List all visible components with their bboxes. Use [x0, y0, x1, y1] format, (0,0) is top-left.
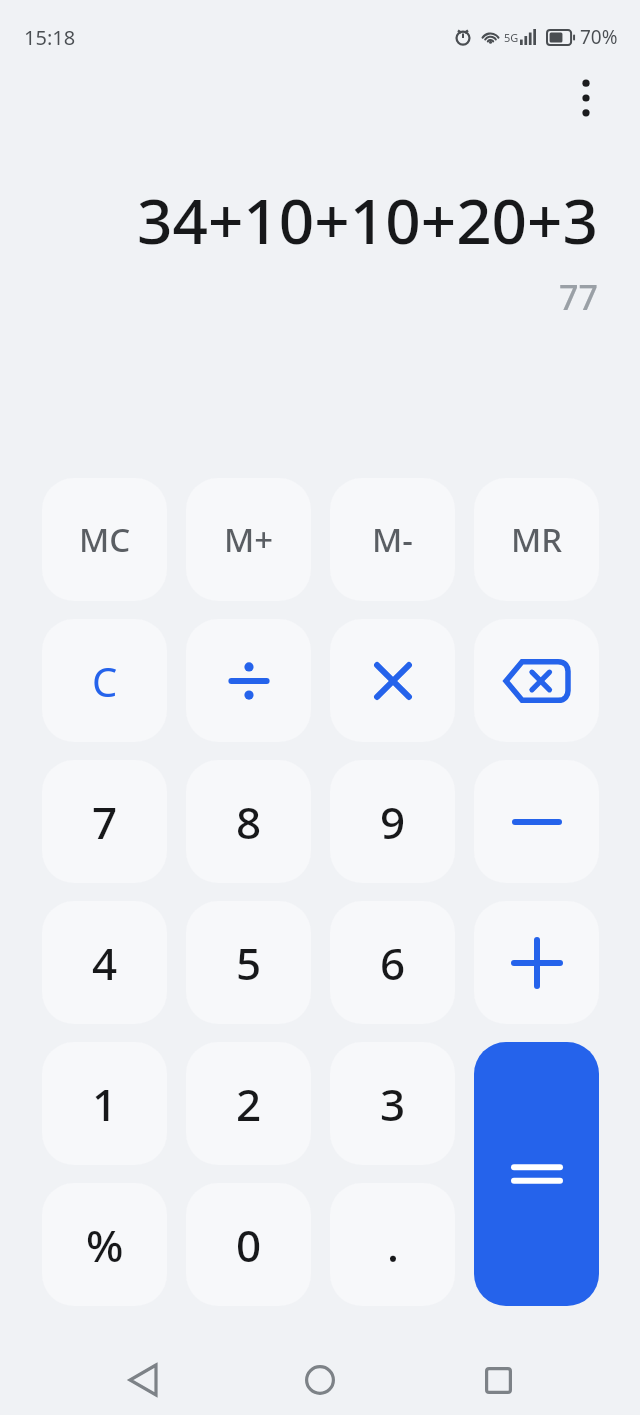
- staticText: 1: [92, 1074, 118, 1134]
- button[interactable]: MC: [42, 478, 167, 601]
- button[interactable]: Home: [285, 1345, 355, 1415]
- staticText: 3: [380, 1074, 406, 1134]
- button[interactable]: More options: [560, 72, 612, 124]
- staticText: 8: [236, 792, 262, 852]
- staticText: 4: [92, 933, 118, 993]
- button[interactable]: M-: [330, 478, 455, 601]
- button[interactable]: Back: [108, 1345, 178, 1415]
- staticText: 0: [236, 1215, 262, 1275]
- button[interactable]: 3: [330, 1042, 455, 1165]
- staticText: 70%: [580, 24, 618, 50]
- staticText: M+: [224, 517, 274, 562]
- button[interactable]: %: [42, 1183, 167, 1306]
- staticText: 5: [236, 933, 262, 993]
- button[interactable]: Recent apps: [463, 1345, 533, 1415]
- staticText: 15:18: [24, 24, 76, 51]
- staticText: .: [387, 1215, 399, 1275]
- button[interactable]: 1: [42, 1042, 167, 1165]
- staticText: MC: [79, 517, 131, 562]
- button[interactable]: Divide: [186, 619, 311, 742]
- button[interactable]: M+: [186, 478, 311, 601]
- staticText: C: [92, 654, 118, 708]
- button[interactable]: 5: [186, 901, 311, 1024]
- staticText: M-: [372, 517, 413, 562]
- staticText: %: [86, 1215, 124, 1275]
- staticText: 7: [92, 792, 118, 852]
- button[interactable]: Minus: [474, 760, 599, 883]
- button[interactable]: 6: [330, 901, 455, 1024]
- button[interactable]: Plus: [474, 901, 599, 1024]
- button[interactable]: C: [42, 619, 167, 742]
- button[interactable]: 0: [186, 1183, 311, 1306]
- button[interactable]: Multiply: [330, 619, 455, 742]
- staticText: 34+10+10+20+3: [136, 178, 598, 262]
- button[interactable]: Backspace: [474, 619, 599, 742]
- button[interactable]: 4: [42, 901, 167, 1024]
- button[interactable]: Equals: [474, 1042, 599, 1306]
- button[interactable]: MR: [474, 478, 599, 601]
- staticText: MR: [511, 517, 563, 562]
- staticText: 5G: [504, 30, 519, 45]
- button[interactable]: 9: [330, 760, 455, 883]
- staticText: 6: [380, 933, 406, 993]
- button[interactable]: .: [330, 1183, 455, 1306]
- staticText: 77: [559, 274, 598, 320]
- button[interactable]: 2: [186, 1042, 311, 1165]
- staticText: 2: [236, 1074, 262, 1134]
- staticText: 9: [380, 792, 406, 852]
- button[interactable]: 7: [42, 760, 167, 883]
- button[interactable]: 8: [186, 760, 311, 883]
